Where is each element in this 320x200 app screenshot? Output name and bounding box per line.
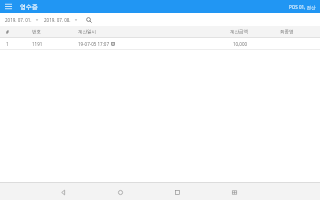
staticText: 계산금액	[230, 29, 248, 35]
button[interactable]: Home	[112, 184, 128, 200]
staticText: 번호	[32, 29, 41, 35]
button[interactable]: Search	[83, 14, 94, 25]
button[interactable]: POS 01, 전산	[289, 4, 316, 10]
staticText: 10,000	[233, 41, 248, 47]
button[interactable]: Recent apps	[169, 184, 185, 200]
button[interactable]: 2019. 07. 08.	[43, 16, 79, 24]
staticText: 최종명	[280, 29, 294, 35]
button[interactable]: Open navigation menu	[3, 1, 14, 12]
button[interactable]: 1	[0, 38, 320, 50]
button[interactable]: 2019. 07. 01.	[4, 16, 40, 24]
button[interactable]: Switch keyboard	[226, 184, 242, 200]
staticText: 2019. 07. 08.	[44, 17, 71, 23]
staticText: 2019. 07. 01.	[5, 17, 32, 23]
staticText: 1191	[32, 41, 43, 47]
staticText: 19-07-05 17:07	[78, 41, 110, 47]
staticText: 영수증	[20, 3, 38, 11]
staticText: #	[6, 29, 9, 35]
staticText: 계산일시	[78, 29, 96, 35]
staticText: 1	[6, 41, 9, 47]
button[interactable]: Back	[55, 184, 71, 200]
